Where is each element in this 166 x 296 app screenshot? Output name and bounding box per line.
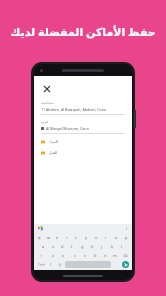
staticText: f [71, 244, 73, 249]
staticText: نقطة البداية [41, 101, 54, 105]
button[interactable]: s [48, 242, 57, 251]
staticText: w [47, 235, 51, 240]
staticText: o [115, 235, 118, 240]
button[interactable]: ⇧ [35, 251, 47, 260]
staticText: . [115, 262, 117, 267]
button[interactable]: ?١٢٣ [35, 261, 47, 268]
button[interactable]: t [71, 233, 81, 242]
staticText: i [105, 235, 107, 240]
staticText: m [113, 253, 117, 258]
button[interactable]: ☺ [55, 261, 64, 268]
staticText: k [111, 244, 114, 249]
staticText: d [61, 244, 64, 249]
button[interactable]: l [117, 242, 127, 251]
staticText: ⇧ [40, 254, 43, 258]
button[interactable]: c [69, 251, 80, 260]
staticText: v [84, 253, 87, 258]
staticText: s [52, 244, 54, 249]
button[interactable]: a [39, 242, 48, 251]
staticText: Al Manyal Museum, Cairo [46, 126, 89, 131]
staticText: h [91, 244, 94, 249]
button[interactable]: w [44, 233, 53, 242]
staticText: z [52, 253, 54, 258]
button[interactable]: العمل [41, 151, 125, 155]
staticText: a [42, 244, 45, 249]
button[interactable]: / [47, 261, 55, 268]
staticText: g [81, 244, 84, 249]
button[interactable]: g [77, 242, 87, 251]
staticText: ☺ [58, 263, 62, 267]
staticText: حفظ الأماكن المفضلة لديك [8, 24, 158, 39]
button[interactable]: o [111, 233, 121, 242]
button[interactable]: f [67, 242, 77, 251]
staticText: الوجهة [41, 121, 49, 124]
staticText: x [62, 253, 65, 258]
staticText: ?١٢٣ [38, 263, 45, 267]
button[interactable]: Close [41, 83, 52, 94]
button[interactable]: الوجهة [41, 121, 125, 134]
staticText: المنزل [49, 140, 59, 144]
button[interactable]: h [87, 242, 97, 251]
staticText: ⌫ [123, 254, 128, 258]
button[interactable]: n [100, 251, 110, 260]
staticText: r [66, 235, 68, 240]
button[interactable]: ⌫ [120, 251, 131, 260]
button[interactable]: z [47, 251, 58, 260]
button[interactable]: y [81, 233, 91, 242]
staticText: العمل [49, 151, 58, 155]
button[interactable]: Send [122, 261, 129, 268]
staticText: j [101, 244, 103, 249]
button[interactable]: v [80, 251, 90, 260]
button[interactable]: d [57, 242, 67, 251]
button[interactable]: k [107, 242, 117, 251]
button[interactable]: b [90, 251, 100, 260]
staticText: y [85, 235, 88, 240]
button[interactable]: m [110, 251, 120, 260]
button[interactable]: q [35, 233, 44, 242]
button[interactable]: u [91, 233, 101, 242]
staticText: n [104, 253, 107, 258]
staticText: b [94, 253, 97, 258]
staticText: / [50, 262, 52, 267]
staticText: p [125, 235, 128, 240]
staticText: u [95, 235, 98, 240]
button[interactable]: r [62, 233, 71, 242]
button[interactable]: x [58, 251, 69, 260]
button[interactable]: . [112, 261, 120, 268]
button[interactable]: نقطة البداية [41, 101, 125, 115]
button[interactable]: e [53, 233, 62, 242]
staticText: c [74, 253, 76, 258]
staticText: 11 Abdeen, Al Balaqsah, Abdeen, Cairo [41, 107, 107, 112]
staticText: l [121, 244, 123, 249]
button[interactable]: j [97, 242, 107, 251]
staticText: e [56, 235, 59, 240]
button[interactable]: المنزل [41, 140, 125, 144]
button[interactable]: i [101, 233, 111, 242]
staticText: q [38, 235, 41, 240]
staticText: t [75, 235, 77, 240]
button[interactable]: p [121, 233, 131, 242]
